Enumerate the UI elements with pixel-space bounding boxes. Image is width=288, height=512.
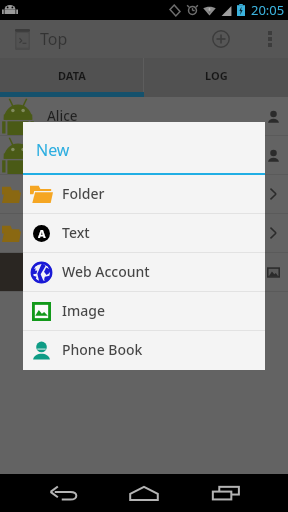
staticText: Top	[40, 28, 68, 50]
staticText: Documents	[47, 185, 121, 203]
staticText: Folder	[62, 184, 105, 203]
staticText: A	[38, 226, 46, 241]
staticText: Phone Book	[62, 340, 143, 359]
staticText: New	[36, 139, 70, 161]
button[interactable]: Home	[112, 474, 176, 512]
staticText: 20:05	[251, 1, 285, 19]
button[interactable]: Image	[23, 292, 265, 330]
button[interactable]: A	[23, 214, 265, 252]
button[interactable]: Alice	[0, 97, 288, 135]
button[interactable]: Web Account	[23, 253, 265, 291]
button[interactable]: Back	[32, 474, 96, 512]
button[interactable]: Add	[203, 21, 239, 57]
button[interactable]: Folder	[23, 175, 265, 213]
button[interactable]: Pictures	[0, 214, 288, 252]
staticText: Pictures	[47, 224, 99, 242]
staticText: LOG	[205, 68, 228, 83]
button[interactable]: Bob	[0, 136, 288, 174]
staticText: Bob	[47, 146, 73, 164]
staticText: DATA	[58, 68, 86, 83]
staticText: Room	[47, 263, 85, 281]
button[interactable]: Phone Book	[23, 331, 265, 369]
button[interactable]: DATA	[0, 58, 143, 92]
staticText: Web Account	[62, 262, 150, 281]
staticText: Alice	[47, 107, 78, 125]
button[interactable]: Recents	[194, 474, 258, 512]
staticText: Text	[62, 223, 90, 242]
button[interactable]: More options	[255, 24, 285, 54]
button[interactable]: LOG	[144, 58, 288, 92]
button[interactable]: Room	[0, 253, 288, 291]
button[interactable]: Documents	[0, 175, 288, 213]
staticText: Image	[62, 301, 105, 320]
